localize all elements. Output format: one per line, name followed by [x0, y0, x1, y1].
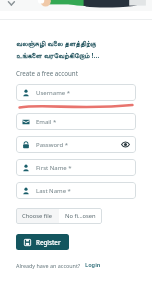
staticText: Password * [36, 141, 69, 149]
staticText: Already have an account? [16, 262, 81, 269]
staticText: உங்களை வரவேற்கிறோம் !… [16, 50, 100, 60]
button[interactable]: Password * [16, 136, 136, 153]
button[interactable]: Register [16, 234, 69, 250]
staticText: Choose file [22, 212, 53, 220]
button[interactable]: Login [84, 260, 102, 270]
button[interactable]: First Name * [16, 159, 136, 176]
button[interactable]: Email * [16, 113, 136, 130]
staticText: Register [36, 238, 61, 246]
staticText: Email * [36, 118, 57, 126]
button[interactable]: Show password [121, 140, 130, 149]
staticText: Username * [36, 89, 71, 97]
button[interactable]: Username * [16, 84, 136, 101]
button[interactable]: Choose file [16, 208, 102, 224]
staticText: Create a free account [16, 69, 78, 77]
staticText: Last Name * [36, 187, 71, 195]
staticText: First Name * [36, 164, 72, 172]
staticText: No fi…osen [65, 212, 96, 220]
staticText: Login [85, 261, 101, 269]
staticText: வலஞ்சுழி வலை தளத்திற்கு [16, 38, 97, 48]
button[interactable]: Last Name * [16, 182, 136, 199]
